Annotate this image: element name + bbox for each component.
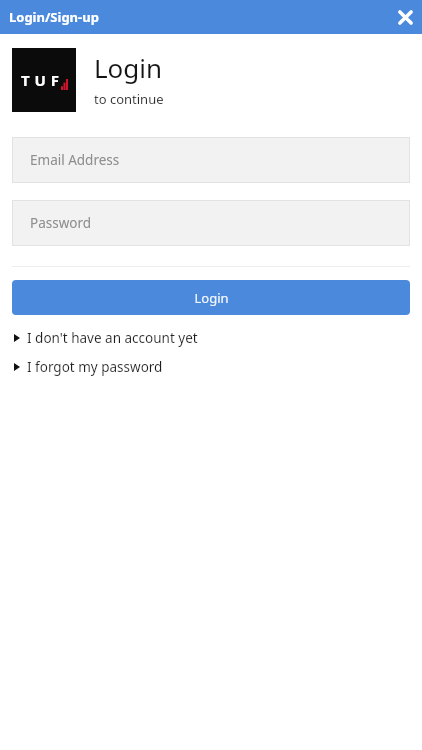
- button[interactable]: Login: [12, 280, 410, 315]
- staticText: Password: [30, 214, 92, 232]
- button[interactable]: Close: [388, 0, 422, 34]
- staticText: I don't have an account yet: [27, 329, 198, 347]
- staticText: to continue: [94, 90, 164, 108]
- staticText: Email Address: [30, 151, 120, 169]
- button[interactable]: Password: [12, 200, 410, 246]
- button[interactable]: I don't have an account yet: [0, 327, 422, 349]
- staticText: T U F: [21, 70, 60, 90]
- button[interactable]: Email Address: [12, 137, 410, 183]
- staticText: Login/Sign-up: [9, 8, 99, 26]
- staticText: I forgot my password: [27, 358, 163, 376]
- staticText: Login: [194, 289, 229, 307]
- staticText: Login: [94, 50, 163, 85]
- button[interactable]: I forgot my password: [0, 356, 422, 378]
